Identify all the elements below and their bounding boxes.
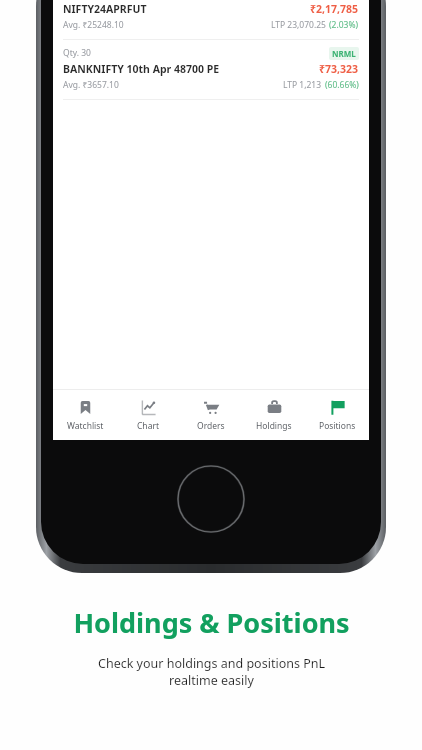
- button[interactable]: Qty. 30: [53, 40, 369, 99]
- staticText: Holdings: [256, 420, 292, 432]
- staticText: Holdings & Positions: [73, 604, 350, 641]
- button[interactable]: Orders: [180, 395, 242, 436]
- staticText: Check your holdings and positions PnL re…: [98, 655, 325, 689]
- staticText: NIFTY24APRFUT: [63, 2, 147, 16]
- button[interactable]: Chart: [117, 395, 179, 436]
- staticText: Orders: [197, 420, 225, 432]
- staticText: (2.03%): [329, 19, 359, 31]
- button[interactable]: Qty. 100: [53, 0, 369, 39]
- staticText: BANKNIFTY 10th Apr 48700 PE: [63, 62, 220, 76]
- staticText: Avg. ₹25248.10: [63, 19, 124, 31]
- staticText: Qty. 30: [63, 47, 91, 59]
- staticText: ₹73,323: [319, 62, 359, 76]
- staticText: Positions: [319, 420, 356, 432]
- staticText: LTP 23,070.25: [271, 19, 326, 31]
- staticText: Chart: [137, 420, 159, 432]
- staticText: LTP 1,213: [283, 79, 322, 91]
- button[interactable]: Watchlist: [54, 395, 116, 436]
- button[interactable]: Positions: [306, 395, 368, 436]
- staticText: ₹2,17,785: [310, 2, 359, 16]
- staticText: Watchlist: [67, 420, 104, 432]
- button[interactable]: Holdings: [243, 395, 305, 436]
- staticText: NRML: [332, 48, 356, 59]
- staticText: Avg. ₹3657.10: [63, 79, 119, 91]
- staticText: (60.66%): [325, 79, 359, 91]
